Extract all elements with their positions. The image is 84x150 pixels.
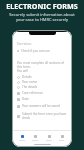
button[interactable]: The details: [17, 85, 38, 89]
staticText: You must complete all sections of this f…: [17, 61, 68, 73]
staticText: Inbox: [46, 139, 52, 142]
staticText: ELECTRONIC FORMS: [6, 1, 78, 11]
button[interactable]: Your answers will be saved: [17, 104, 60, 108]
staticText: Check if you can use: [21, 49, 50, 53]
staticText: Your answers will be saved: [22, 104, 60, 108]
button[interactable]: Your name: [17, 80, 38, 84]
button[interactable]: Date: [17, 97, 29, 101]
staticText: Tax return: [17, 42, 32, 46]
staticText: More: [59, 139, 65, 142]
button[interactable]: Submit the form once you have check: [17, 112, 68, 120]
button[interactable]: Case reference: [17, 91, 43, 95]
staticText: Securely submit information about your c…: [9, 12, 75, 22]
button[interactable]: More: [59, 131, 65, 142]
staticText: Your name: [22, 80, 38, 84]
staticText: Home: [19, 139, 25, 142]
button[interactable]: Forms: [32, 131, 39, 142]
staticText: Details: [22, 75, 32, 79]
button[interactable]: Details: [17, 75, 32, 79]
button[interactable]: Inbox: [46, 131, 52, 142]
staticText: Date: [22, 97, 29, 101]
staticText: Case reference: [22, 91, 43, 95]
button[interactable]: Check if you can use: [17, 49, 50, 53]
staticText: The details: [22, 85, 38, 89]
staticText: Submit the form once you have check: [22, 112, 68, 120]
button[interactable]: Home: [19, 131, 25, 142]
staticText: Forms: [32, 139, 39, 142]
